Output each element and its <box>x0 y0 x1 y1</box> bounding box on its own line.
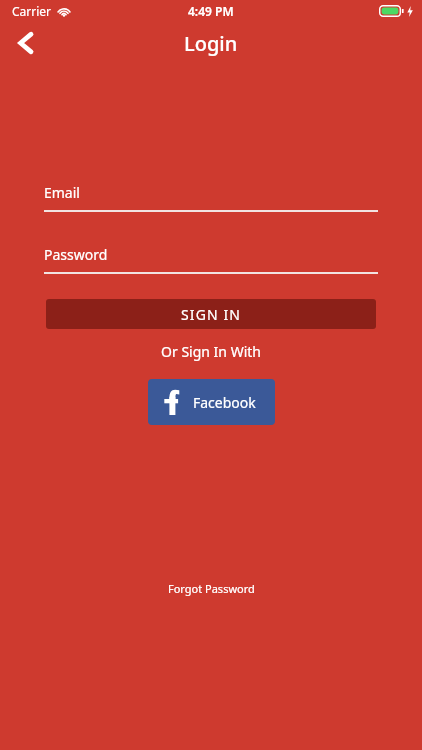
staticText: SIGN IN <box>181 305 241 324</box>
staticText: Facebook <box>193 393 256 412</box>
staticText: Password <box>44 245 108 264</box>
button[interactable]: Forgot Password <box>158 577 265 600</box>
button[interactable]: Password <box>44 245 378 274</box>
staticText: Carrier <box>12 3 52 19</box>
button[interactable]: Email <box>44 183 378 212</box>
staticText: Forgot Password <box>168 581 255 596</box>
staticText: Or Sign In With <box>161 342 261 361</box>
button[interactable]: Facebook <box>148 379 275 425</box>
staticText: Email <box>44 183 80 202</box>
staticText: Login <box>184 30 238 57</box>
button[interactable]: SIGN IN <box>46 299 376 329</box>
staticText: 4:49 PM <box>188 3 234 19</box>
button[interactable]: Back <box>6 23 46 63</box>
